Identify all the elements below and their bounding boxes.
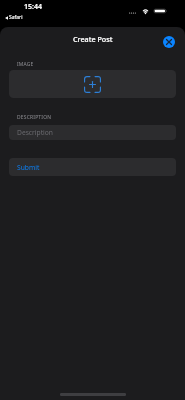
staticText: Create Post (73, 34, 113, 44)
staticText: Submit (17, 163, 40, 172)
button[interactable]: Description (9, 125, 176, 140)
staticText: DESCRIPTION (17, 114, 52, 121)
staticText: Safari (9, 14, 23, 21)
staticText: IMAGE (17, 61, 34, 68)
button[interactable]: Submit (9, 158, 176, 176)
button[interactable]: Add image (9, 70, 176, 98)
staticText: 15:44 (24, 2, 42, 12)
button[interactable]: Close (163, 36, 175, 48)
staticText: Description (17, 128, 53, 137)
